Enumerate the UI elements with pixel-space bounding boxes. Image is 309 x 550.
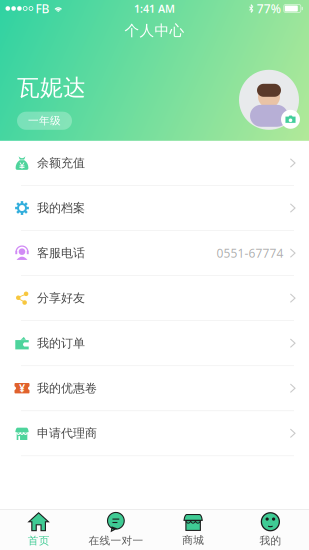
staticText: 我的档案 (37, 201, 85, 215)
button[interactable]: 首页 (0, 510, 77, 550)
staticText: 我的 (259, 534, 281, 547)
staticText: 个人中心 (124, 21, 184, 39)
staticText: 余额充值 (37, 156, 85, 170)
staticText: 商城 (182, 534, 204, 547)
staticText: FB (35, 0, 49, 16)
staticText: 申请代理商 (37, 426, 97, 441)
staticText: 客服电话 (37, 246, 85, 260)
button[interactable]: 我的档案 (0, 186, 309, 231)
staticText: 我的订单 (37, 336, 85, 350)
button[interactable]: 在线一对一 (77, 510, 154, 550)
button[interactable]: ¥ (0, 366, 309, 411)
button[interactable]: 分享好友 (0, 276, 309, 321)
button[interactable]: 我的 (232, 510, 309, 550)
button[interactable]: 商城 (154, 510, 232, 550)
staticText: ¥ (19, 381, 25, 395)
staticText: 在线一对一 (88, 534, 143, 547)
button[interactable]: 客服电话 (0, 231, 309, 276)
staticText: 首页 (28, 534, 50, 547)
button[interactable]: 余额充值 (0, 141, 309, 186)
button[interactable]: 一年级 (17, 112, 72, 130)
staticText: 1:41 AM (134, 1, 175, 16)
staticText: 分享好友 (37, 291, 85, 305)
button[interactable]: 我的订单 (0, 321, 309, 366)
staticText: 瓦妮达 (17, 74, 86, 102)
button[interactable]: 申请代理商 (0, 411, 309, 456)
button[interactable]: Change profile photo (239, 70, 299, 130)
staticText: 我的优惠卷 (37, 381, 97, 396)
staticText: 一年级 (28, 114, 61, 127)
staticText: 77% (257, 0, 281, 16)
staticText: 0551-67774 (216, 245, 283, 261)
